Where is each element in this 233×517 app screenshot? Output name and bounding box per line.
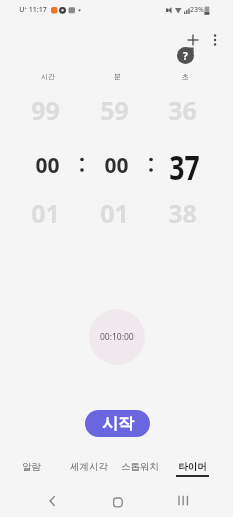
button[interactable]: 시작 (85, 410, 150, 437)
staticText: 01 (100, 196, 129, 228)
staticText: 분 (114, 72, 121, 81)
staticText: 시간 (41, 72, 55, 81)
staticText: ? (183, 49, 188, 63)
button[interactable]: 타이머 (166, 455, 218, 479)
staticText: 초 (182, 72, 189, 81)
staticText: 세계시각 (70, 461, 108, 473)
staticText: 36 (168, 93, 197, 125)
staticText: 알람 (22, 461, 41, 473)
button[interactable]: 00 (89, 148, 143, 182)
staticText: 00:10:00 (100, 331, 134, 343)
staticText: 23% (190, 5, 204, 15)
staticText: 시작 (102, 414, 134, 434)
staticText: 37 (169, 144, 200, 186)
staticText: 00 (104, 151, 129, 180)
button[interactable]: 37 (154, 144, 214, 186)
button[interactable] (103, 488, 132, 517)
staticText: 59 (100, 93, 129, 125)
button[interactable]: 스톱워치 (112, 455, 168, 479)
staticText: 스톱워치 (121, 461, 159, 473)
button[interactable]: 세계시각 (61, 455, 117, 479)
staticText: 01 (31, 196, 60, 228)
button[interactable] (169, 486, 197, 514)
staticText: 00 (35, 151, 60, 180)
button[interactable]: ? (177, 47, 194, 64)
button[interactable]: 00 (20, 148, 74, 182)
staticText: 38 (168, 196, 197, 228)
button[interactable]: 알람 (5, 455, 57, 479)
staticText: U⁺ 11:17 (19, 5, 47, 15)
button[interactable]: 00:10:00 (89, 309, 145, 365)
button[interactable] (183, 30, 203, 50)
button[interactable] (38, 487, 66, 515)
staticText: 99 (31, 93, 60, 125)
button[interactable] (206, 30, 224, 48)
staticText: 타이머 (178, 461, 207, 473)
